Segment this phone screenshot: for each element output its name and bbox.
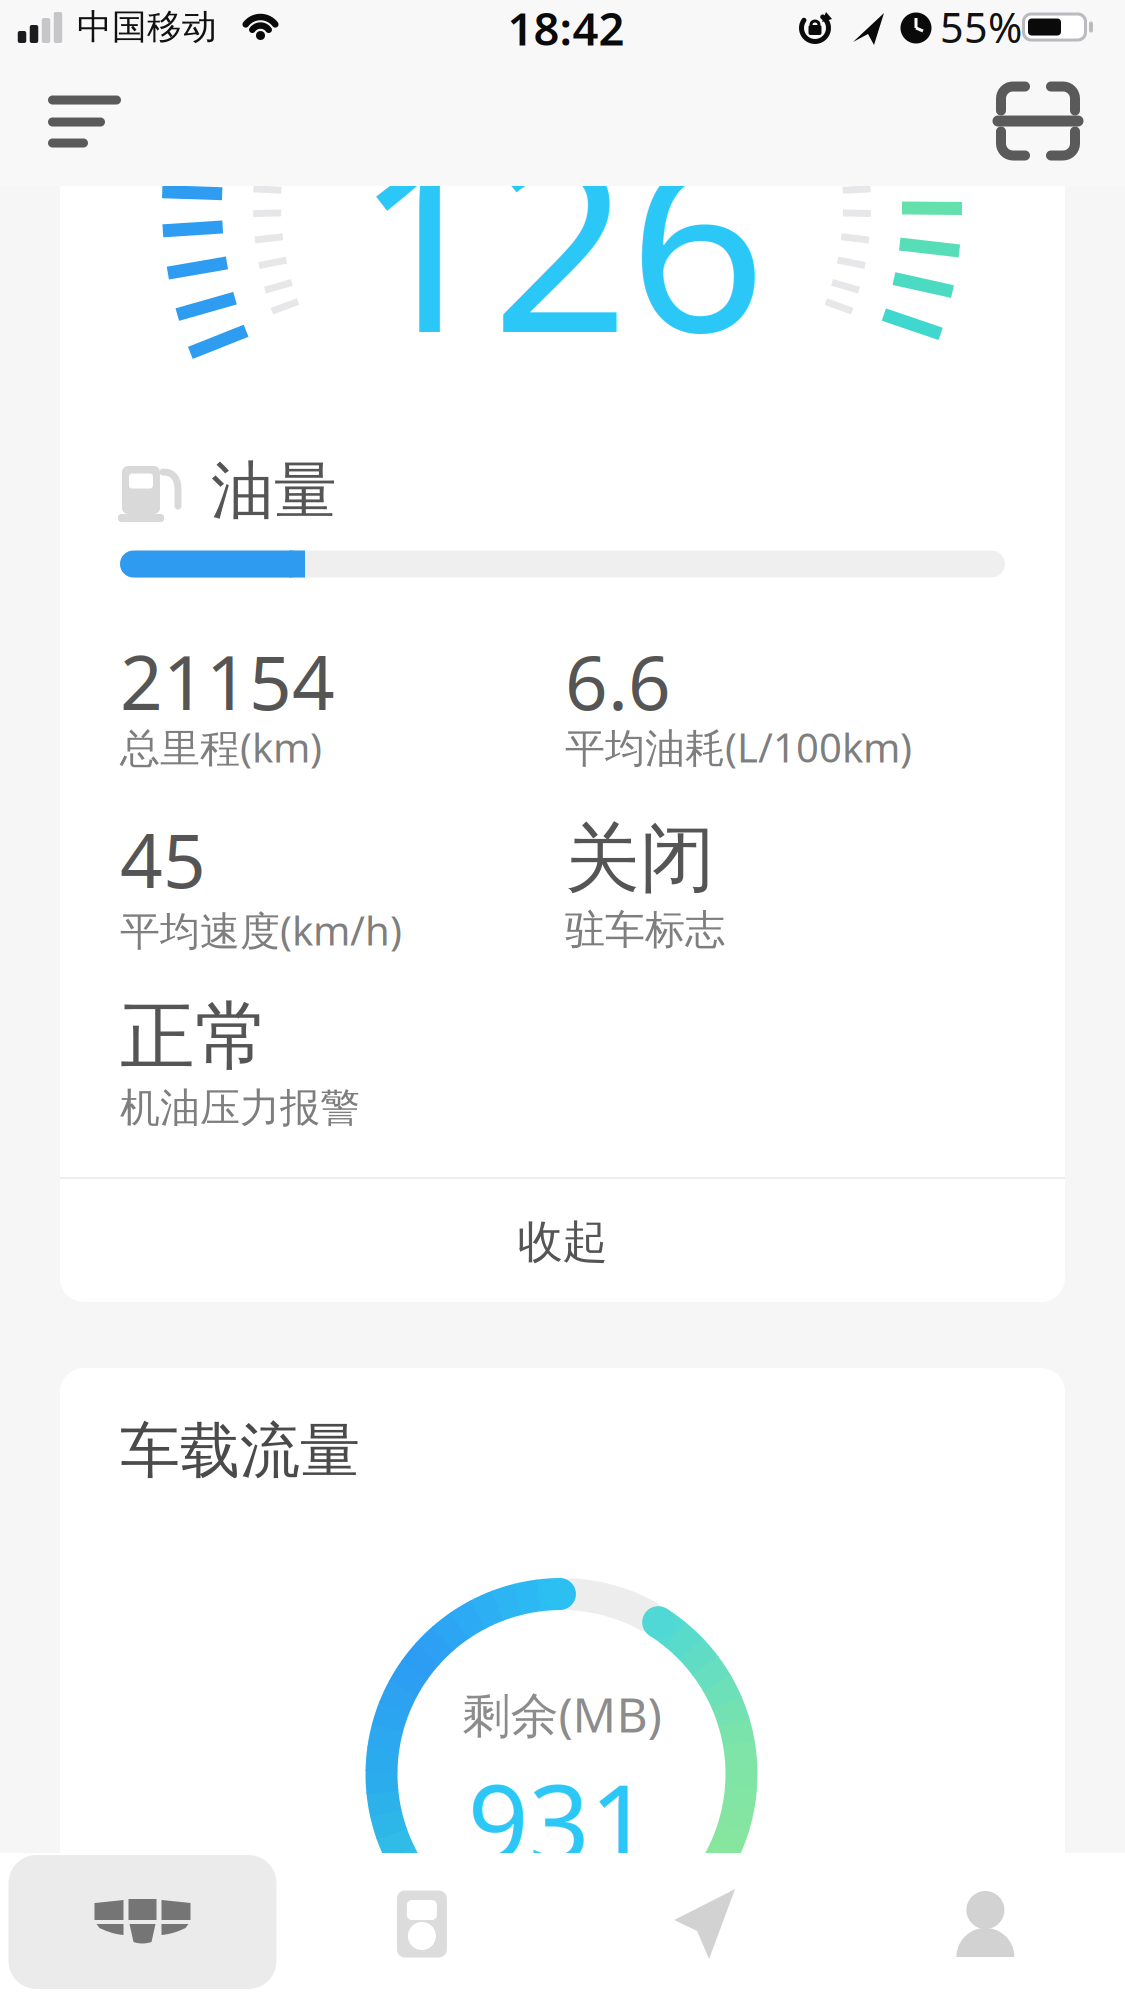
staticText: 平均速度(km/h) (120, 903, 402, 956)
staticText: 931 (467, 1749, 650, 1891)
button[interactable]: Profile (914, 1854, 1054, 1994)
staticText: 45 (120, 809, 206, 909)
staticText: 车载流量 (120, 1414, 360, 1488)
staticText: 55% (940, 0, 1022, 54)
button[interactable]: 收起 (60, 1182, 1065, 1302)
staticText: 126 (354, 80, 765, 398)
button[interactable]: Devices (352, 1854, 492, 1994)
staticText: 机油压力报警 (120, 1083, 360, 1132)
staticText: 收起 (517, 1214, 607, 1270)
staticText: 18:42 (507, 0, 624, 58)
staticText: 6.6 (565, 631, 671, 731)
button[interactable]: Menu (48, 84, 178, 200)
staticText: 油量 (211, 452, 337, 529)
button[interactable]: Navigation (633, 1854, 773, 1994)
button[interactable]: Vehicle (8, 1855, 276, 1989)
button[interactable]: Scan (973, 61, 1103, 181)
staticText: 关闭 (565, 813, 715, 905)
staticText: 21154 (120, 631, 335, 731)
staticText: 平均油耗(L/100km) (565, 720, 912, 773)
staticText: 正常 (120, 991, 270, 1083)
staticText: 剩余(MB) (462, 1682, 661, 1746)
staticText: 中国移动 (77, 6, 217, 48)
staticText: 总里程(km) (120, 720, 322, 773)
staticText: 驻车标志 (565, 905, 725, 954)
